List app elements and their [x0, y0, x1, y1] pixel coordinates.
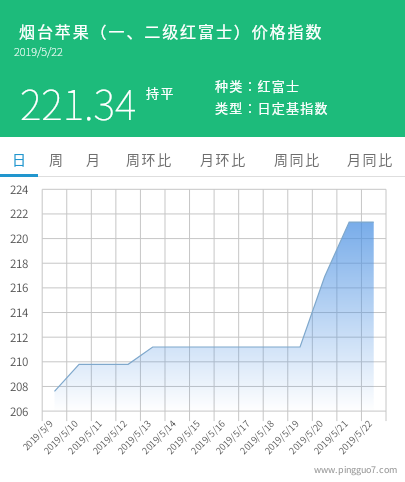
staticText: 日 — [12, 149, 28, 169]
staticText: 烟台苹果（一、二级红富士）价格指数 — [19, 19, 324, 42]
staticText: 月 — [86, 149, 102, 169]
staticText: 持平 — [146, 83, 176, 102]
staticText: 月环比 — [200, 149, 247, 169]
button[interactable]: 月环比 — [185, 137, 259, 176]
staticText: 种类：红富士 — [215, 76, 301, 95]
button[interactable]: 日 — [0, 137, 37, 176]
staticText: 类型：日定基指数 — [215, 98, 329, 117]
staticText: 221.34 — [20, 72, 137, 131]
button[interactable]: 月 — [74, 137, 111, 176]
staticText: 周 — [49, 149, 65, 169]
button[interactable]: 周同比 — [259, 137, 333, 176]
button[interactable]: 月同比 — [333, 137, 405, 176]
button[interactable]: 周环比 — [111, 137, 185, 176]
staticText: 2019/5/22 — [14, 43, 63, 59]
staticText: 周同比 — [274, 149, 321, 169]
staticText: 月同比 — [347, 149, 394, 169]
staticText: 周环比 — [126, 149, 173, 169]
button[interactable]: 周 — [37, 137, 74, 176]
